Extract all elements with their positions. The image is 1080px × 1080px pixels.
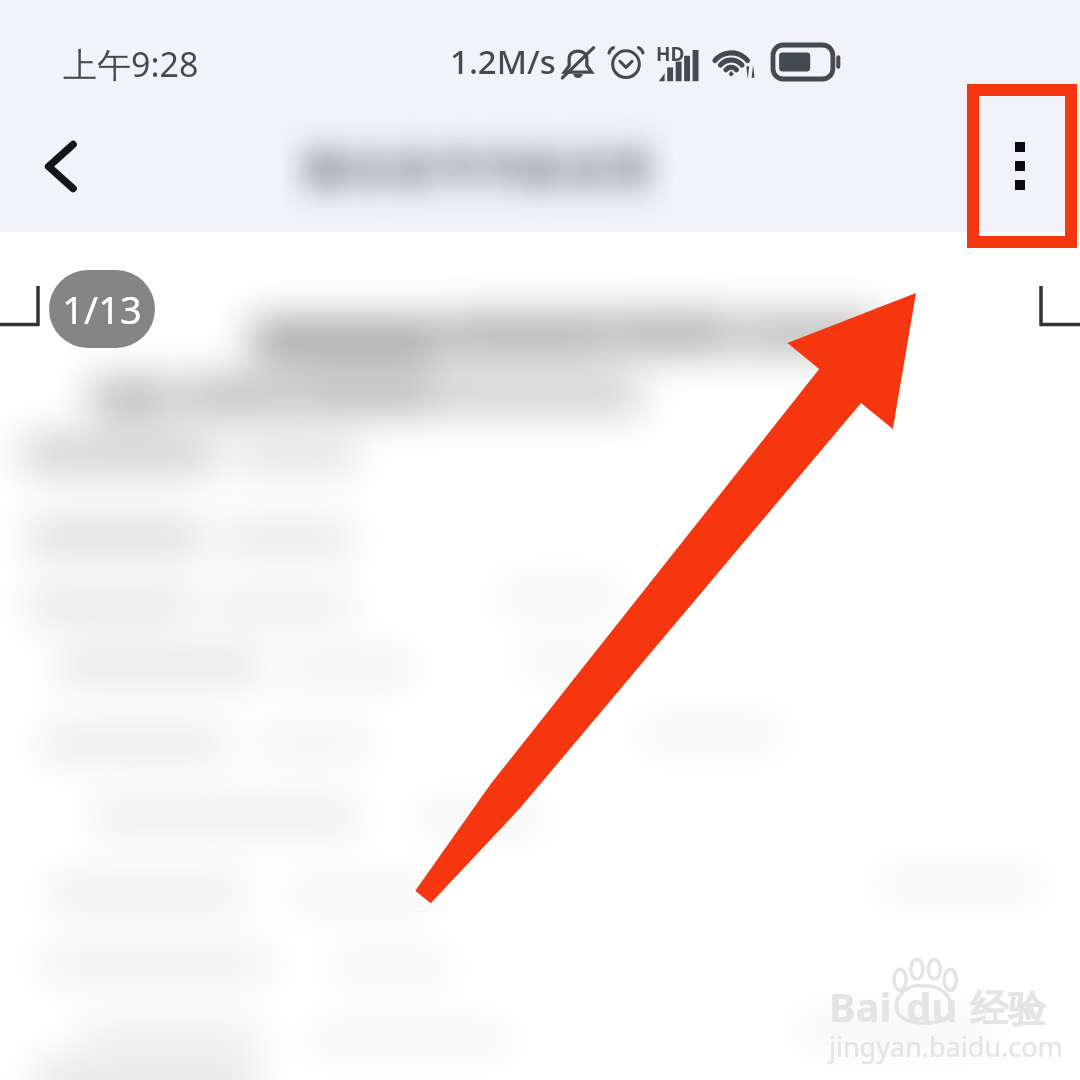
- staticText: HD: [656, 41, 685, 67]
- staticText: 1.2M/s: [450, 39, 556, 84]
- staticText: jingyan.baidu.com: [829, 1028, 1063, 1065]
- staticText: du: [906, 979, 958, 1033]
- button[interactable]: Back: [8, 114, 112, 218]
- staticText: 经验: [970, 985, 1046, 1033]
- staticText: 1/13: [62, 283, 142, 335]
- button[interactable]: 1/13: [49, 270, 155, 348]
- staticText: 上午9:28: [63, 41, 199, 87]
- staticText: 微信读书书架设置: [302, 142, 654, 197]
- button[interactable]: More options: [972, 118, 1068, 214]
- staticText: Bai: [829, 979, 892, 1033]
